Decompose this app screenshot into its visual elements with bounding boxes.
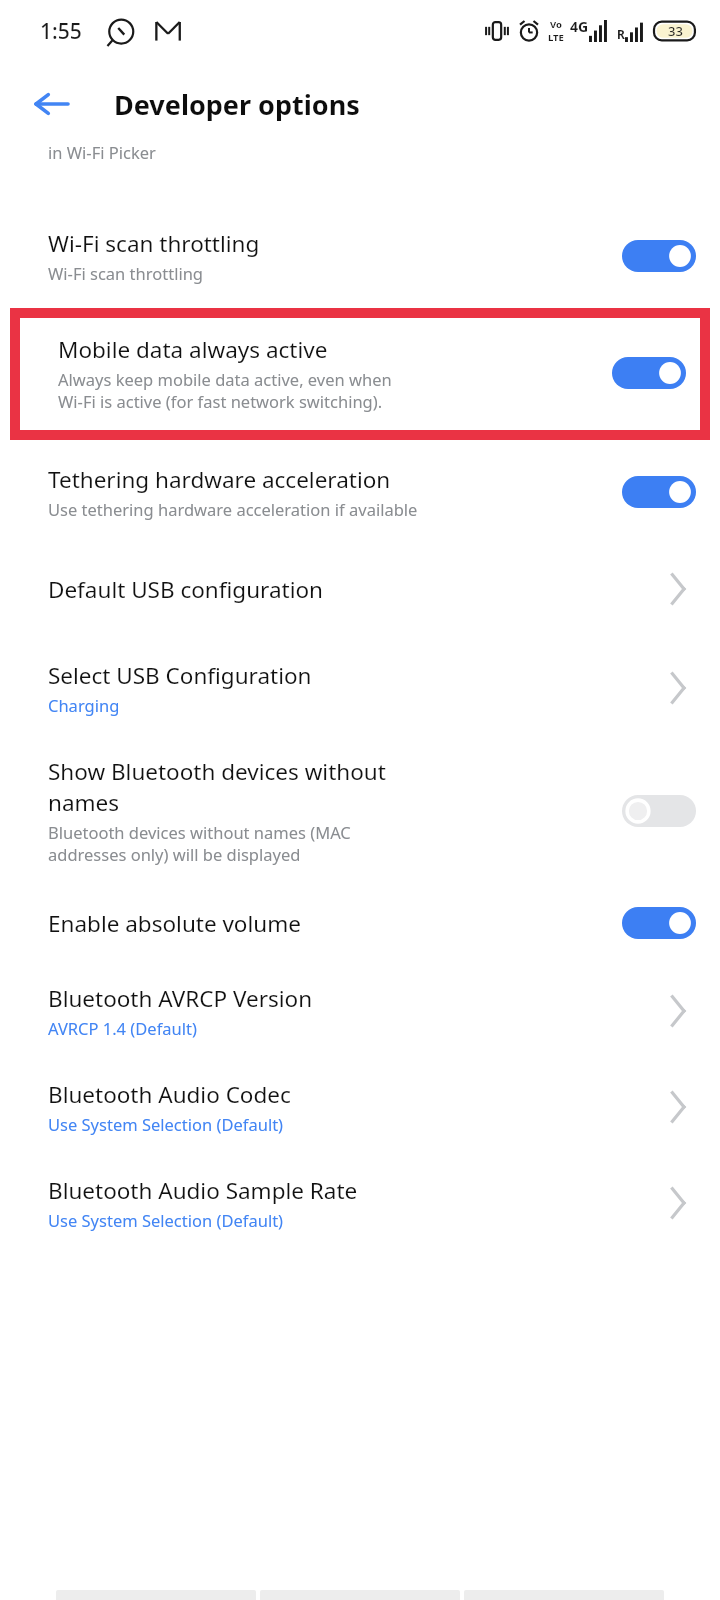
staticText: Charging xyxy=(48,694,120,716)
button[interactable]: Bluetooth AVRCP Version xyxy=(0,983,720,1039)
button[interactable]: Show Bluetooth devices without xyxy=(0,756,720,865)
staticText: Mobile data always active xyxy=(58,334,328,365)
staticText: LTE xyxy=(548,31,564,44)
staticText: Bluetooth Audio Codec xyxy=(48,1079,291,1110)
staticText: Wi-Fi is active (for fast network switch… xyxy=(58,390,383,412)
staticText: names xyxy=(48,787,120,818)
staticText: 4G xyxy=(570,17,589,36)
staticText: Show Bluetooth devices without xyxy=(48,756,386,787)
staticText: Vo xyxy=(550,18,562,31)
button[interactable]: Bluetooth Audio Codec xyxy=(0,1079,720,1135)
staticText: Use System Selection (Default) xyxy=(48,1209,284,1231)
staticText: in Wi-Fi Picker xyxy=(48,141,156,163)
staticText: 33 xyxy=(668,22,683,40)
staticText: Use tethering hardware acceleration if a… xyxy=(48,498,418,520)
staticText: AVRCP 1.4 (Default) xyxy=(48,1017,197,1039)
staticText: Developer options xyxy=(114,86,360,123)
button[interactable]: Toggle on xyxy=(612,353,686,393)
staticText: addresses only) will be displayed xyxy=(48,843,301,865)
staticText: R xyxy=(617,26,625,42)
staticText: Tethering hardware acceleration xyxy=(48,464,391,495)
button[interactable]: Back xyxy=(22,75,80,133)
button[interactable]: Bluetooth Audio Sample Rate xyxy=(0,1175,720,1231)
staticText: Enable absolute volume xyxy=(48,908,301,939)
staticText: Select USB Configuration xyxy=(48,660,312,691)
button[interactable]: Tethering hardware acceleration xyxy=(0,464,720,520)
staticText: Bluetooth Audio Sample Rate xyxy=(48,1175,358,1206)
button[interactable]: Toggle on xyxy=(622,472,696,512)
button[interactable]: Select USB Configuration xyxy=(0,660,720,716)
button[interactable]: Toggle on xyxy=(622,236,696,276)
button[interactable]: Enable absolute volume xyxy=(0,903,720,943)
button[interactable]: Wi-Fi scan throttling xyxy=(0,228,720,284)
button[interactable]: Toggle off xyxy=(622,791,696,831)
staticText: Bluetooth devices without names (MAC xyxy=(48,821,351,843)
staticText: Wi-Fi scan throttling xyxy=(48,228,260,259)
staticText: Wi-Fi scan throttling xyxy=(48,262,203,284)
button[interactable]: Toggle on xyxy=(622,903,696,943)
staticText: Bluetooth AVRCP Version xyxy=(48,983,313,1014)
button[interactable]: Mobile data always active xyxy=(20,318,700,430)
staticText: Use System Selection (Default) xyxy=(48,1113,284,1135)
staticText: 1:55 xyxy=(40,17,82,46)
button[interactable]: Default USB configuration xyxy=(0,566,720,612)
staticText: Always keep mobile data active, even whe… xyxy=(58,368,392,390)
staticText: Default USB configuration xyxy=(48,574,323,605)
